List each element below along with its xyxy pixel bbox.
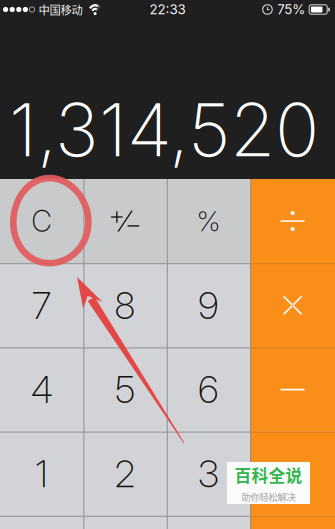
staticText: 6	[198, 367, 219, 412]
button[interactable]: .	[167, 516, 250, 529]
staticText: 1	[35, 451, 48, 496]
staticText: 中国移动	[39, 1, 83, 18]
button[interactable]: Multiply	[250, 263, 335, 347]
staticText: 8	[115, 283, 136, 328]
button[interactable]: Divide	[250, 179, 335, 263]
button[interactable]: 8	[83, 263, 167, 347]
staticText: 5	[115, 367, 135, 412]
staticText: 75%	[277, 1, 305, 17]
button[interactable]: Minus	[250, 347, 335, 432]
staticText: 百科全说	[234, 463, 302, 487]
button[interactable]: C	[0, 179, 83, 263]
button[interactable]: %	[167, 179, 250, 263]
button[interactable]: 9	[167, 263, 250, 347]
button[interactable]: 2	[83, 432, 167, 516]
button[interactable]: 0	[0, 516, 167, 529]
button[interactable]: 4	[0, 347, 83, 432]
staticText: 2	[115, 451, 136, 496]
button[interactable]: Plus minus	[83, 179, 167, 263]
staticText: 4	[31, 367, 53, 412]
button[interactable]: 3	[167, 432, 250, 516]
staticText: 1,314,520	[9, 85, 319, 174]
staticText: 9	[198, 283, 219, 328]
button[interactable]: 1	[0, 432, 83, 516]
staticText: C	[31, 203, 52, 239]
staticText: 7	[32, 283, 52, 328]
staticText: 22:33	[149, 1, 185, 17]
button[interactable]: 6	[167, 347, 250, 432]
button[interactable]: Equals	[250, 516, 335, 529]
button[interactable]: 7	[0, 263, 83, 347]
button[interactable]: 5	[83, 347, 167, 432]
staticText: %	[196, 204, 220, 238]
button[interactable]: Plus	[250, 432, 335, 516]
staticText: 3	[198, 451, 219, 496]
staticText: 助你轻松解决	[241, 490, 295, 503]
